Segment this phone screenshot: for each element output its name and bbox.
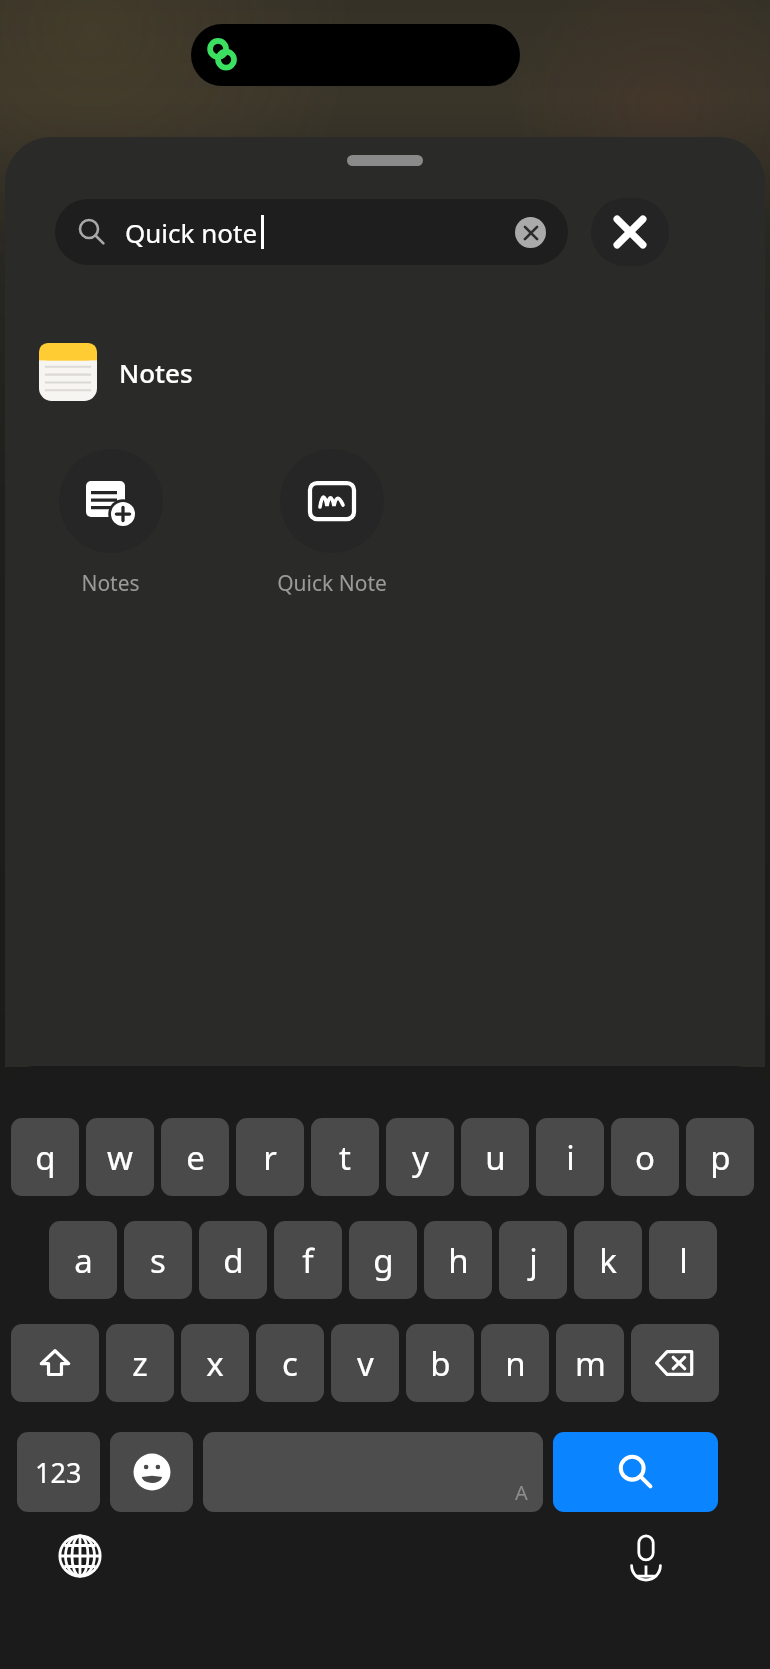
staticText: j <box>529 1238 538 1283</box>
button[interactable]: l <box>649 1221 717 1299</box>
button[interactable]: k <box>574 1221 642 1299</box>
button[interactable]: x <box>181 1324 249 1402</box>
staticText: v <box>357 1341 374 1386</box>
button[interactable]: j <box>499 1221 567 1299</box>
button[interactable]: Voice input <box>614 1524 678 1588</box>
button[interactable]: Space <box>203 1432 543 1512</box>
button[interactable]: c <box>256 1324 324 1402</box>
staticText: r <box>263 1135 277 1180</box>
button[interactable]: e <box>161 1118 229 1196</box>
button[interactable]: Notes <box>33 449 188 598</box>
button[interactable]: Close <box>591 198 669 266</box>
button[interactable]: w <box>86 1118 154 1196</box>
button[interactable]: s <box>124 1221 192 1299</box>
staticText: x <box>206 1341 224 1386</box>
button[interactable]: h <box>424 1221 492 1299</box>
staticText: e <box>186 1135 205 1180</box>
staticText: w <box>107 1135 133 1180</box>
button[interactable]: d <box>199 1221 267 1299</box>
button[interactable]: p <box>686 1118 754 1196</box>
staticText: m <box>575 1341 606 1386</box>
button[interactable]: i <box>536 1118 604 1196</box>
staticText: 123 <box>35 1454 82 1491</box>
staticText: A <box>515 1479 528 1506</box>
staticText: y <box>412 1135 429 1180</box>
staticText: q <box>35 1135 56 1180</box>
button[interactable]: g <box>349 1221 417 1299</box>
button[interactable]: t <box>311 1118 379 1196</box>
button[interactable]: v <box>331 1324 399 1402</box>
button[interactable]: z <box>106 1324 174 1402</box>
staticText: Quick note <box>125 215 258 250</box>
button[interactable]: q <box>11 1118 79 1196</box>
staticText: n <box>505 1341 526 1386</box>
button[interactable]: Quick Note <box>254 449 409 598</box>
staticText: g <box>373 1238 394 1283</box>
button[interactable]: f <box>274 1221 342 1299</box>
button[interactable]: Backspace <box>631 1324 719 1402</box>
button[interactable]: m <box>556 1324 624 1402</box>
staticText: z <box>132 1341 148 1386</box>
staticText: a <box>74 1238 93 1283</box>
staticText: Notes <box>119 355 193 390</box>
button[interactable]: Clear text <box>515 217 546 248</box>
staticText: k <box>599 1238 617 1283</box>
button[interactable]: 123 <box>17 1432 100 1512</box>
staticText: l <box>679 1238 688 1283</box>
staticText: o <box>635 1135 655 1180</box>
staticText: s <box>150 1238 166 1283</box>
button[interactable]: Search <box>553 1432 718 1512</box>
staticText: h <box>448 1238 469 1283</box>
staticText: Notes <box>81 569 140 598</box>
button[interactable]: a <box>49 1221 117 1299</box>
staticText: c <box>282 1341 298 1386</box>
staticText: b <box>430 1341 451 1386</box>
button[interactable]: o <box>611 1118 679 1196</box>
button[interactable]: n <box>481 1324 549 1402</box>
button[interactable]: y <box>386 1118 454 1196</box>
staticText: u <box>485 1135 506 1180</box>
button[interactable]: Change keyboard language <box>48 1524 112 1588</box>
button[interactable]: Emoji <box>110 1432 193 1512</box>
button[interactable]: Notes <box>39 337 459 407</box>
button[interactable]: u <box>461 1118 529 1196</box>
button[interactable]: r <box>236 1118 304 1196</box>
button[interactable]: Quick note <box>55 199 568 265</box>
staticText: p <box>710 1135 731 1180</box>
staticText: d <box>223 1238 244 1283</box>
staticText: t <box>339 1135 351 1180</box>
staticText: i <box>566 1135 575 1180</box>
button[interactable]: Shift <box>11 1324 99 1402</box>
button[interactable]: b <box>406 1324 474 1402</box>
staticText: f <box>302 1238 314 1283</box>
staticText: Quick Note <box>277 569 387 598</box>
